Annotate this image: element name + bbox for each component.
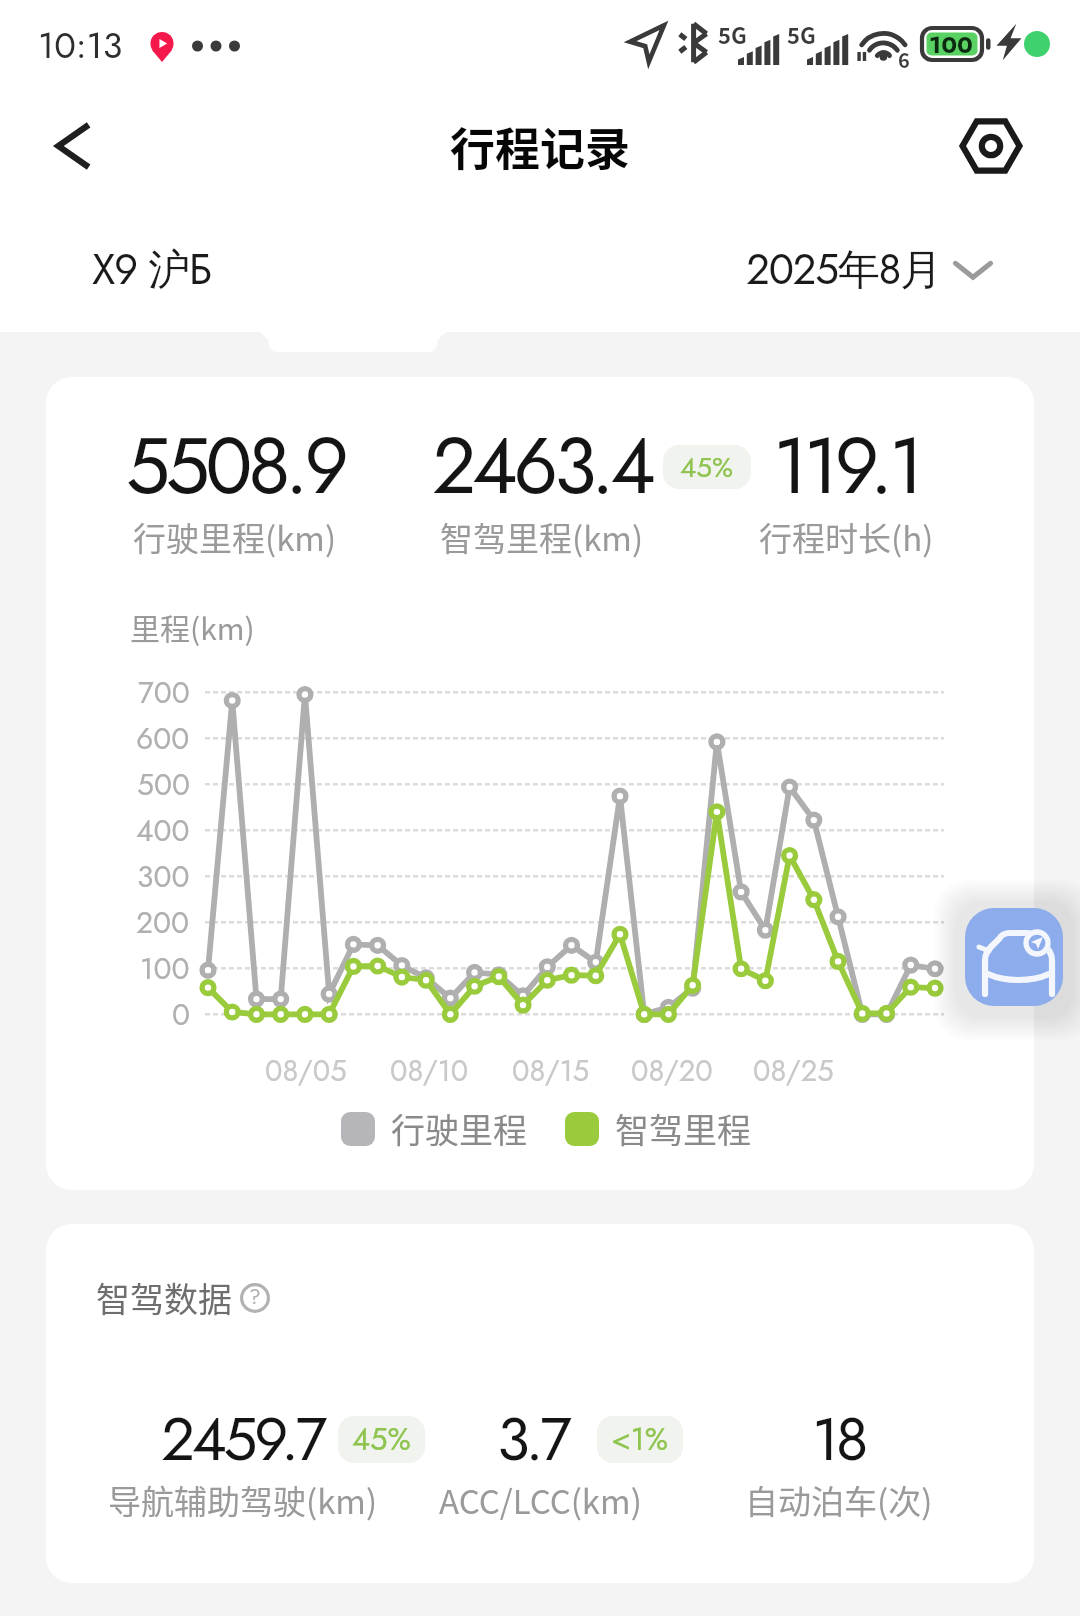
staticText: 智驾里程(km) (440, 513, 644, 561)
staticText: 08/20 (631, 1050, 713, 1092)
staticText: 2459.7 (161, 1396, 325, 1483)
staticText: 3.7 (497, 1396, 569, 1483)
staticText: <1% (611, 1417, 669, 1462)
staticText: 100 (929, 27, 973, 62)
staticText: 08/10 (390, 1050, 469, 1092)
staticText: 300 (137, 855, 190, 898)
staticText: 400 (136, 809, 190, 852)
staticText: 700 (138, 671, 190, 714)
staticText: 0 (172, 993, 190, 1036)
staticText: 5G (787, 18, 816, 50)
staticText: 导航辅助驾驶(km) (108, 1476, 378, 1524)
staticText: 自动泊车(次) (745, 1476, 933, 1524)
staticText: 5G (718, 18, 747, 50)
staticText: ? (249, 1282, 261, 1312)
staticText: 5508.9 (126, 410, 345, 523)
staticText: 6 (898, 45, 910, 74)
staticText: 智驾数据 (96, 1273, 232, 1322)
staticText: 45% (352, 1417, 411, 1462)
button[interactable]: 2025年8月 (746, 239, 993, 300)
staticText: 行驶里程(km) (133, 513, 337, 561)
staticText: ACC/LCC(km) (439, 1476, 642, 1524)
staticText: 200 (136, 901, 190, 944)
staticText: 2025年8月 (746, 239, 941, 300)
staticText: 119.1 (773, 410, 920, 523)
staticText: 10:13 (38, 19, 123, 71)
staticText: 500 (137, 763, 190, 806)
staticText: 里程(km) (130, 605, 255, 648)
staticText: 行程记录 (450, 114, 631, 179)
staticText: 08/15 (512, 1050, 590, 1092)
staticText: 100 (140, 947, 190, 990)
staticText: 600 (136, 717, 190, 760)
staticText: 智驾里程 (615, 1104, 751, 1153)
staticText: 08/25 (753, 1050, 834, 1092)
staticText: 2463.4 (432, 410, 652, 523)
staticText: X9 沪Б (92, 239, 211, 300)
staticText: 45% (680, 447, 734, 487)
staticText: 行驶里程 (391, 1104, 527, 1153)
staticText: 行程时长(h) (759, 513, 934, 561)
button[interactable]: Back (36, 110, 108, 182)
button[interactable]: My vehicle (965, 908, 1063, 1006)
button[interactable]: 智驾数据 (96, 1273, 270, 1322)
staticText: 18 (812, 1396, 866, 1483)
staticText: 08/05 (265, 1050, 347, 1092)
button[interactable]: Settings (952, 107, 1030, 185)
